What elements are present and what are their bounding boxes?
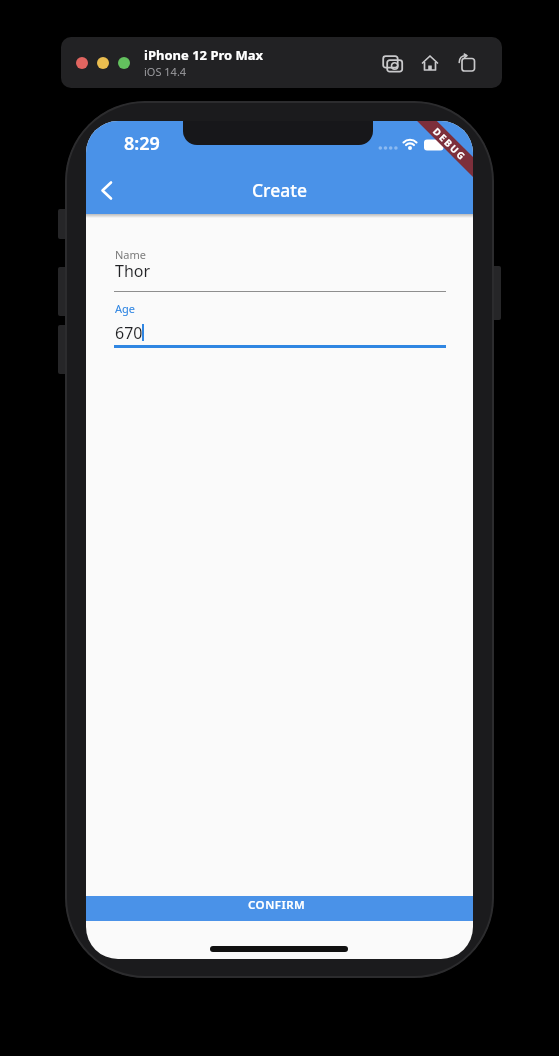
button[interactable]	[118, 57, 130, 69]
button[interactable]: CONFIRM	[86, 896, 473, 921]
button[interactable]	[90, 174, 123, 207]
staticText: Thor	[115, 260, 151, 282]
button[interactable]: Age	[114, 297, 446, 345]
staticText: iPhone 12 Pro Max	[144, 46, 264, 64]
staticText: iOS 14.4	[144, 64, 187, 79]
button[interactable]	[97, 57, 109, 69]
staticText: 670	[115, 322, 143, 344]
staticText: DEBUG	[430, 125, 469, 164]
button[interactable]	[457, 53, 477, 73]
staticText: 8:29	[124, 131, 160, 156]
button[interactable]	[381, 52, 403, 74]
button[interactable]	[86, 121, 473, 214]
staticText: Create	[252, 178, 307, 202]
button[interactable]	[76, 57, 88, 69]
staticText: Age	[115, 301, 135, 316]
staticText: CONFIRM	[248, 897, 306, 913]
button[interactable]: Name	[114, 243, 446, 291]
button[interactable]	[420, 53, 440, 73]
staticText: Name	[115, 247, 147, 262]
